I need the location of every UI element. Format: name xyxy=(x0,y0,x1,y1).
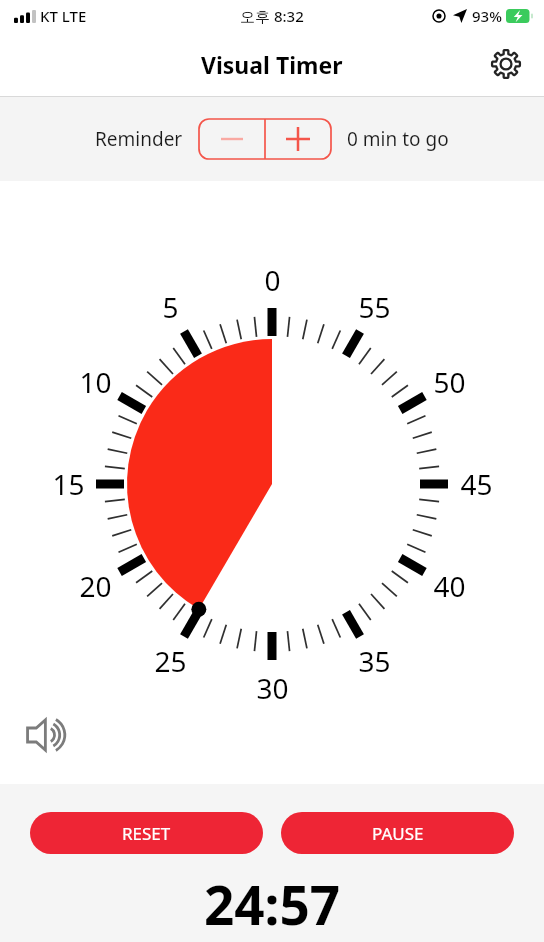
staticText: RESET xyxy=(122,822,171,845)
staticText: 5 xyxy=(162,288,179,326)
staticText: KT LTE xyxy=(40,6,87,26)
staticText: PAUSE xyxy=(372,822,424,845)
button[interactable]: Decrease reminder xyxy=(199,119,265,159)
staticText: 25 xyxy=(154,642,187,680)
staticText: 55 xyxy=(358,288,391,326)
staticText: 45 xyxy=(460,465,493,503)
staticText: 93% xyxy=(472,6,502,26)
staticText: Visual Timer xyxy=(201,49,343,80)
staticText: 0 xyxy=(264,261,281,299)
staticText: 0 min to go xyxy=(347,126,449,152)
staticText: 15 xyxy=(52,465,85,503)
staticText: 오후 8:32 xyxy=(240,6,304,26)
staticText: 20 xyxy=(79,567,112,605)
staticText: Reminder xyxy=(95,126,183,152)
button[interactable]: RESET xyxy=(30,812,263,854)
staticText: 35 xyxy=(358,642,391,680)
button[interactable]: Sound xyxy=(20,708,74,762)
staticText: 24:57 xyxy=(0,868,544,940)
staticText: 30 xyxy=(256,669,289,707)
staticText: 40 xyxy=(433,567,466,605)
button[interactable]: Settings xyxy=(482,40,530,88)
button[interactable]: PAUSE xyxy=(281,812,514,854)
button[interactable]: Increase reminder xyxy=(265,119,331,159)
staticText: 50 xyxy=(433,363,466,401)
staticText: 10 xyxy=(79,363,112,401)
